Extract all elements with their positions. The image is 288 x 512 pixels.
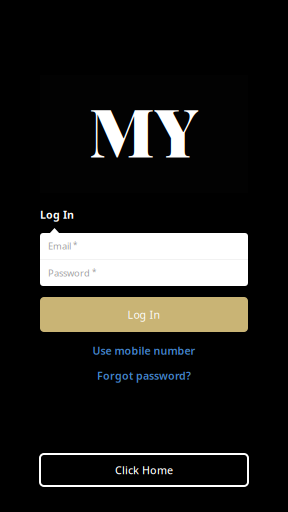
staticText: Email <box>48 240 71 252</box>
staticText: * <box>73 240 77 250</box>
staticText: Forgot password? <box>97 368 191 383</box>
staticText: Log In <box>40 207 74 222</box>
staticText: Click Home <box>115 463 173 477</box>
button[interactable]: Use mobile number <box>40 345 248 356</box>
staticText: Password <box>48 267 90 279</box>
button[interactable]: Log In <box>40 297 248 332</box>
button[interactable]: Forgot password? <box>40 370 248 381</box>
staticText: Use mobile number <box>92 343 195 358</box>
button[interactable]: Email <box>40 233 248 259</box>
staticText: MY <box>89 84 199 174</box>
button[interactable]: Password <box>40 260 248 286</box>
button[interactable]: Click Home <box>40 454 248 486</box>
staticText: Log In <box>127 307 160 322</box>
staticText: * <box>92 267 96 277</box>
